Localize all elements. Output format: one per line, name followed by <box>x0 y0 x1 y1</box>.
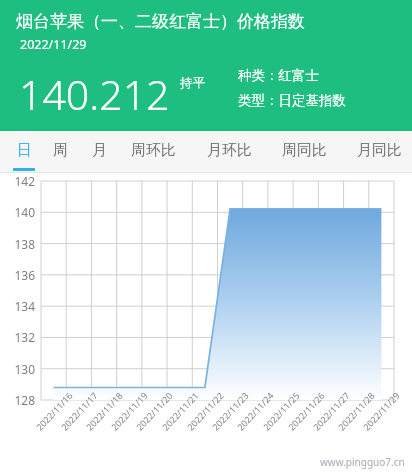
staticText: 月 <box>92 141 107 160</box>
staticText: 2022/11/24 <box>234 389 276 433</box>
button[interactable]: 日 <box>13 131 35 173</box>
staticText: 2022/11/25 <box>260 389 302 433</box>
staticText: 2022/11/26 <box>285 389 327 433</box>
staticText: 2022/11/29 <box>360 389 402 433</box>
staticText: 134 <box>6 298 35 314</box>
staticText: 130 <box>6 361 35 377</box>
staticText: 2022/11/19 <box>108 389 150 433</box>
staticText: 持平 <box>180 75 205 91</box>
staticText: 2022/11/27 <box>310 389 352 433</box>
staticText: 132 <box>6 329 35 345</box>
staticText: 周同比 <box>282 141 327 160</box>
button[interactable]: 月同比 <box>352 131 406 173</box>
staticText: 2022/11/20 <box>133 389 175 433</box>
button[interactable]: 周 <box>49 131 71 173</box>
staticText: 2022/11/23 <box>209 389 251 433</box>
staticText: 2022/11/29 <box>20 36 87 53</box>
staticText: 2022/11/18 <box>83 389 125 433</box>
staticText: 月环比 <box>207 141 252 160</box>
staticText: 月同比 <box>357 141 402 160</box>
staticText: 2022/11/28 <box>335 389 377 433</box>
staticText: 138 <box>6 236 35 252</box>
staticText: 140 <box>6 204 35 220</box>
staticText: www.pingguo7.cn <box>320 455 405 469</box>
staticText: 2022/11/21 <box>159 389 201 433</box>
staticText: 128 <box>6 392 35 408</box>
staticText: 周环比 <box>131 141 176 160</box>
button[interactable]: 周同比 <box>277 131 331 173</box>
staticText: 日 <box>17 141 32 160</box>
staticText: 周 <box>53 141 68 160</box>
staticText: 烟台苹果（一、二级红富士）价格指数 <box>16 11 305 32</box>
staticText: 2022/11/17 <box>58 389 100 433</box>
staticText: 2022/11/16 <box>33 389 75 433</box>
staticText: 142 <box>6 173 35 189</box>
staticText: 2022/11/22 <box>184 389 226 433</box>
button[interactable]: 周环比 <box>126 131 180 173</box>
staticText: 140.212 <box>19 66 170 122</box>
staticText: 136 <box>6 267 35 283</box>
button[interactable]: 月 <box>88 131 110 173</box>
staticText: 种类：红富士 <box>238 67 319 84</box>
button[interactable]: 月环比 <box>202 131 256 173</box>
staticText: 类型：日定基指数 <box>238 92 346 109</box>
